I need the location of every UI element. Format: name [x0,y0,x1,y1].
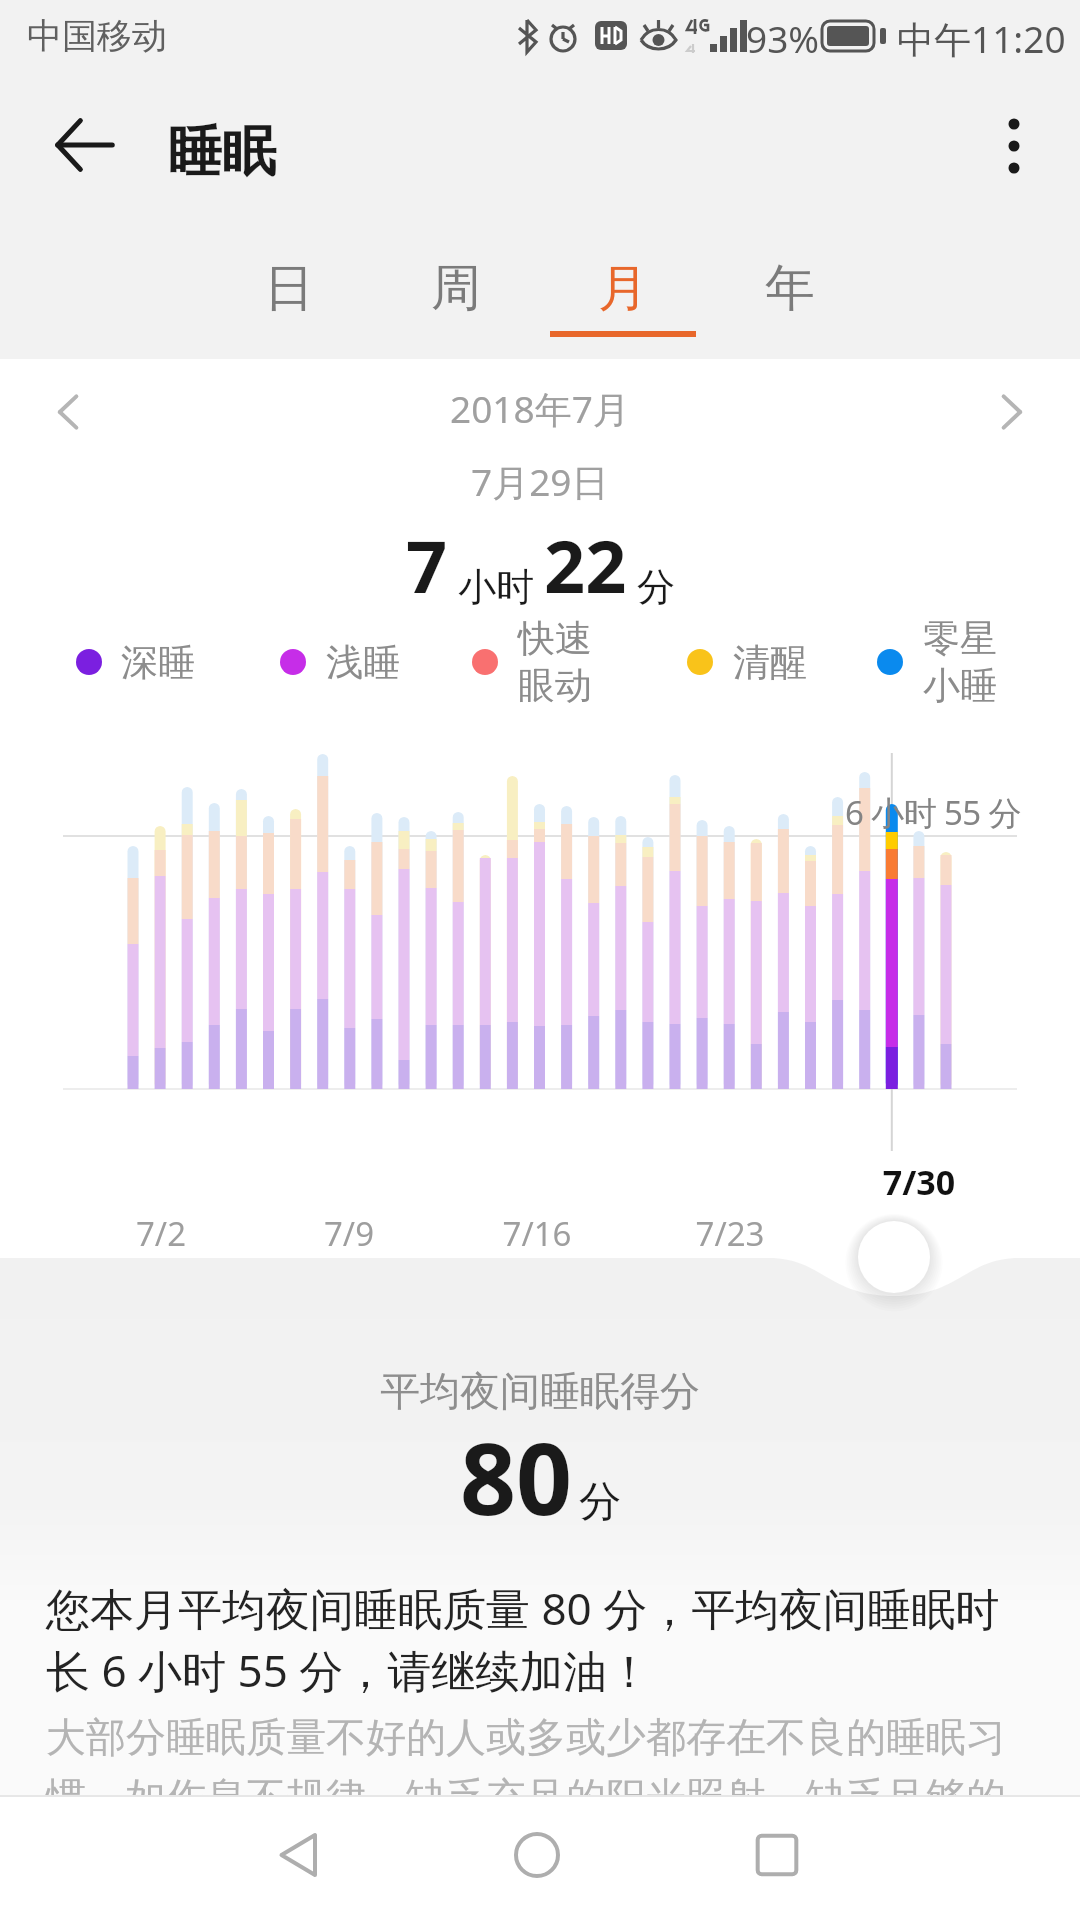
staticText: 7/9 [304,1211,394,1256]
staticText: 7 [406,516,448,614]
staticText: 深睡 [121,639,195,686]
button[interactable]: 周 [373,214,539,359]
button[interactable]: Next month [976,377,1046,447]
staticText: 6 小时 55 分 [845,790,1021,835]
staticText: 月 [598,257,648,320]
staticText: 中午11:20 [897,13,1066,64]
staticText: 80 [460,1410,573,1543]
button[interactable]: Back [40,100,130,190]
staticText: 睡眠 [168,118,276,186]
staticText: 7/2 [116,1211,206,1256]
staticText: 2018年7月 [450,383,630,434]
staticText: 分 [579,1476,621,1529]
staticText: 7/30 [866,1159,972,1205]
staticText: 小睡 [923,662,997,709]
staticText: 浅睡 [326,639,400,686]
staticText: 周 [431,257,481,320]
staticText: 您本月平均夜间睡眠质量 80 分，平均夜间睡眠时长 6 小时 55 分，请继续加… [46,1578,1034,1700]
staticText: 年 [765,257,815,320]
staticText: 分 [627,559,675,611]
button[interactable]: 月 [540,214,706,359]
button[interactable]: Home [489,1807,585,1903]
staticText: 22 [544,516,627,614]
button[interactable]: Previous month [34,377,104,447]
button[interactable]: More options [970,102,1058,190]
staticText: 快速 [518,615,592,662]
staticText: 平均夜间睡眠得分 [380,1366,700,1416]
staticText: 7/23 [685,1211,775,1256]
staticText: 零星 [923,615,997,662]
button[interactable]: Back [252,1807,348,1903]
staticText: 大部分睡眠质量不好的人或多或少都存在不良的睡眠习惯，如作息不规律、缺乏充足的阳光… [46,1712,1034,1883]
button[interactable]: 年 [707,214,873,359]
button[interactable]: 日 [206,214,372,359]
staticText: 7月29日 [471,456,609,507]
staticText: 7/16 [492,1211,582,1256]
staticText: 眼动 [518,662,592,709]
staticText: 93% [746,13,820,63]
button[interactable]: Recent apps [729,1807,825,1903]
staticText: 日 [264,257,314,320]
staticText: 清醒 [733,639,807,686]
staticText: 小时 [448,559,544,611]
staticText: 中国移动 [27,14,167,58]
